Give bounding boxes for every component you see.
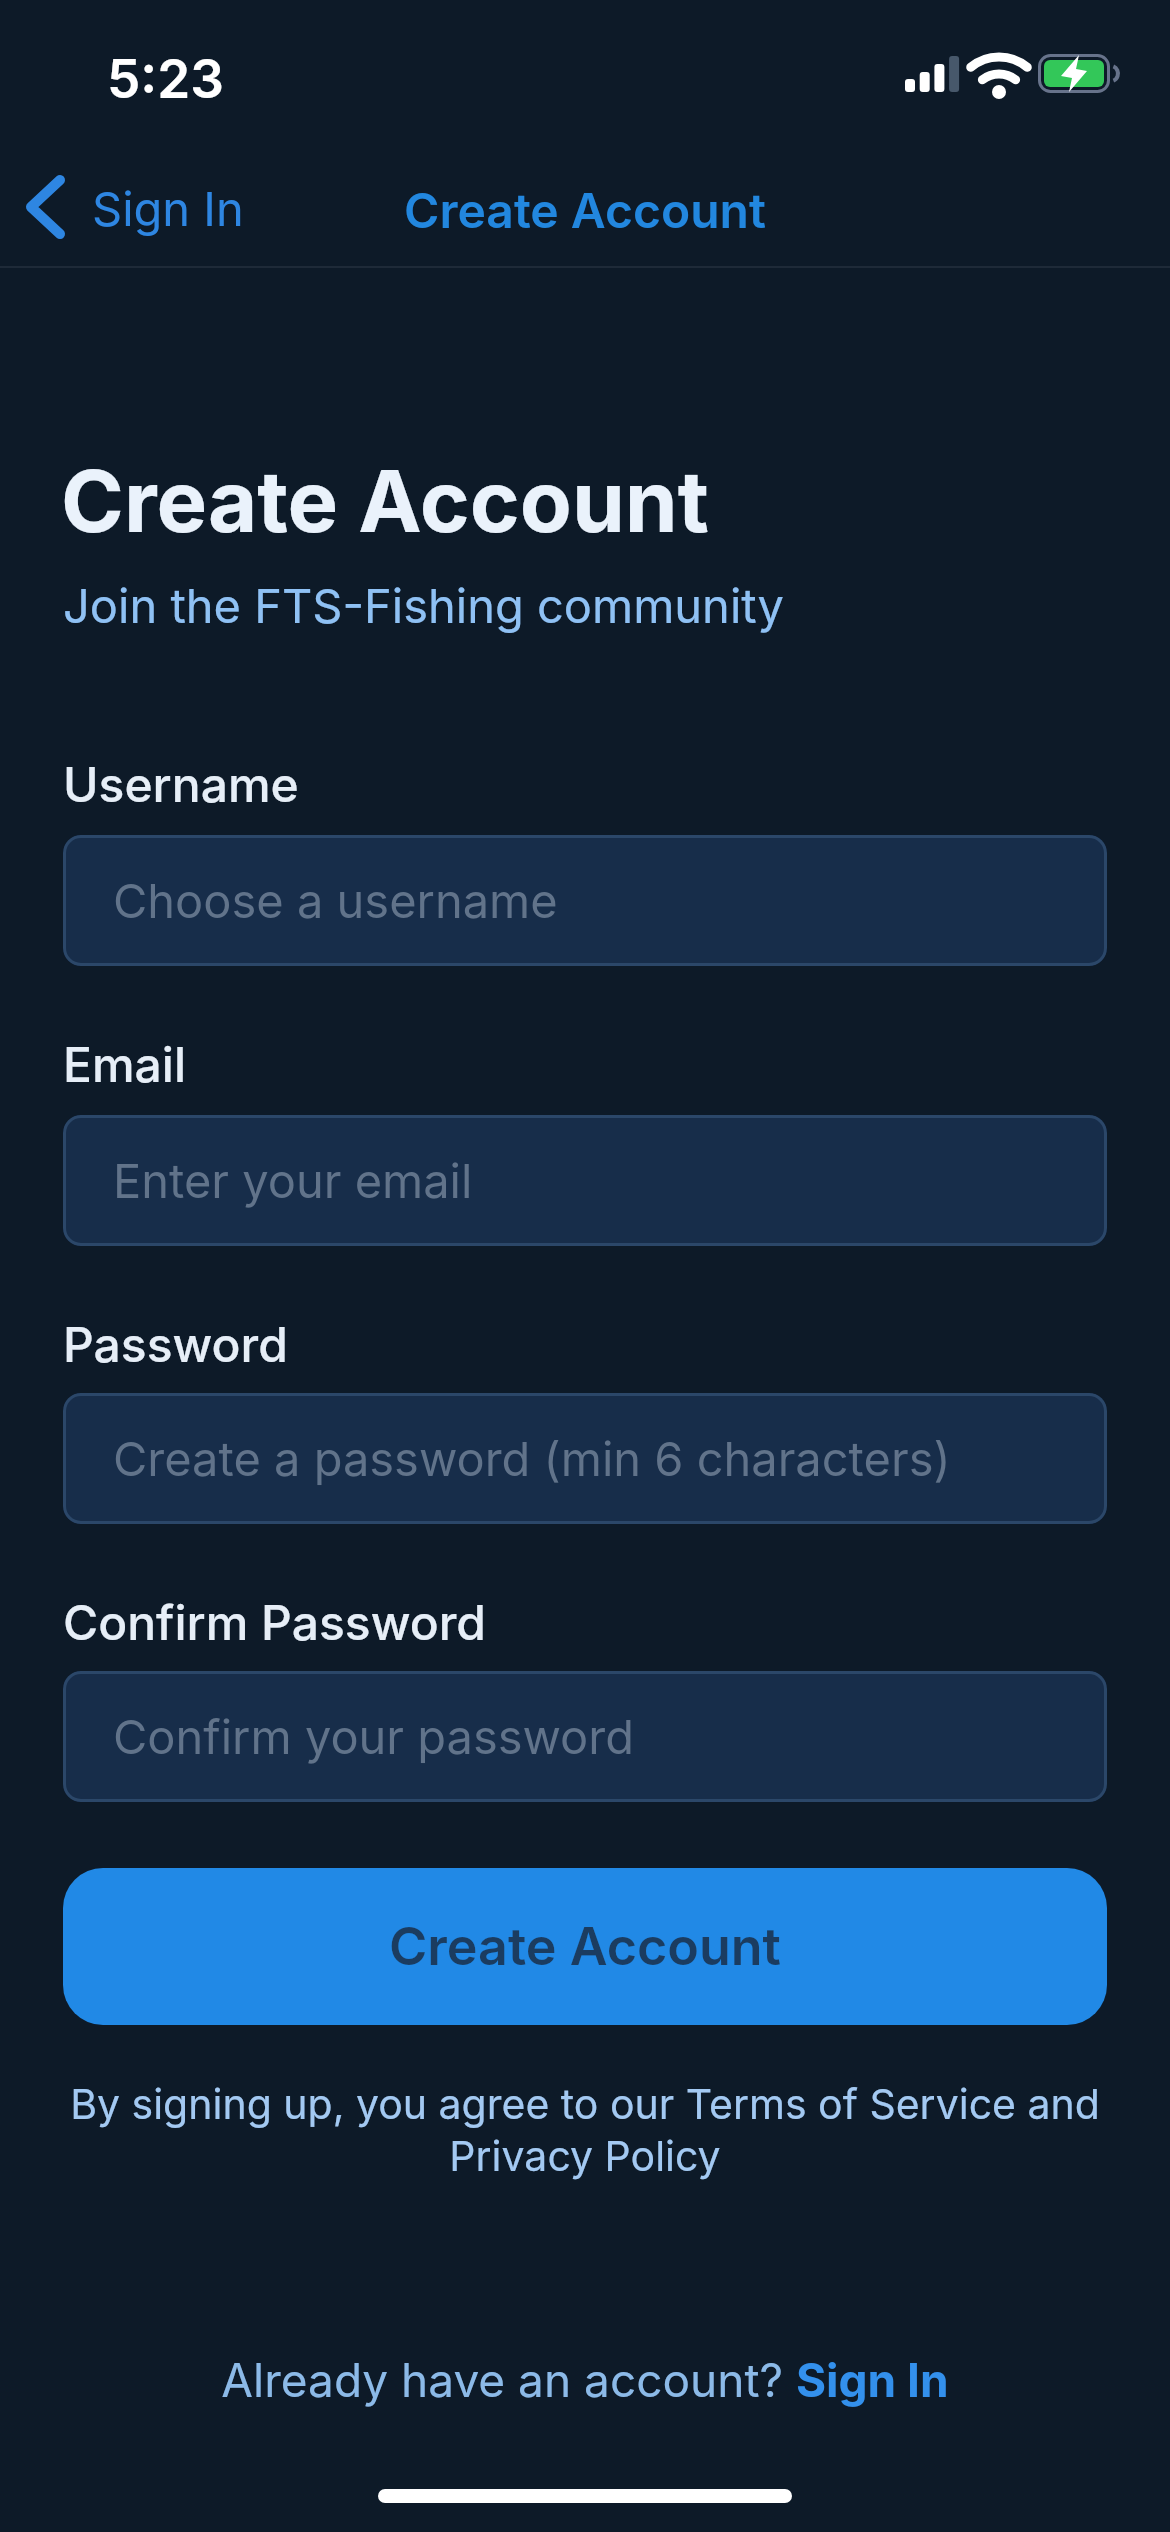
button[interactable]: Sign In [24, 176, 244, 240]
staticText: Create Account [0, 181, 1170, 239]
button[interactable]: Enter your email [63, 1115, 1107, 1246]
button[interactable]: Choose a username [63, 835, 1107, 966]
staticText: Join the FTS-Fishing community [63, 577, 784, 634]
staticText: Sign In [92, 180, 244, 237]
staticText: Email [63, 1035, 187, 1093]
staticText: Create Account [389, 1915, 781, 1978]
staticText: Privacy Policy [0, 2131, 1170, 2181]
staticText: Enter your email [113, 1152, 473, 1209]
staticText: Create a password (min 6 characters) [113, 1430, 951, 1487]
button[interactable]: Confirm your password [63, 1671, 1107, 1802]
staticText: By signing up, you agree to our Terms of… [0, 2079, 1170, 2129]
staticText: Username [63, 755, 299, 813]
button[interactable]: Create Account [63, 1868, 1107, 2025]
staticText: 5:23 [107, 47, 224, 111]
staticText: Confirm your password [113, 1708, 634, 1765]
staticText: Password [63, 1315, 288, 1373]
button[interactable]: Create a password (min 6 characters) [63, 1393, 1107, 1524]
button[interactable]: Already have an account? Sign In [0, 2352, 1170, 2408]
staticText: Choose a username [113, 872, 558, 929]
staticText: Confirm Password [63, 1593, 486, 1651]
staticText: Create Account [61, 450, 709, 553]
